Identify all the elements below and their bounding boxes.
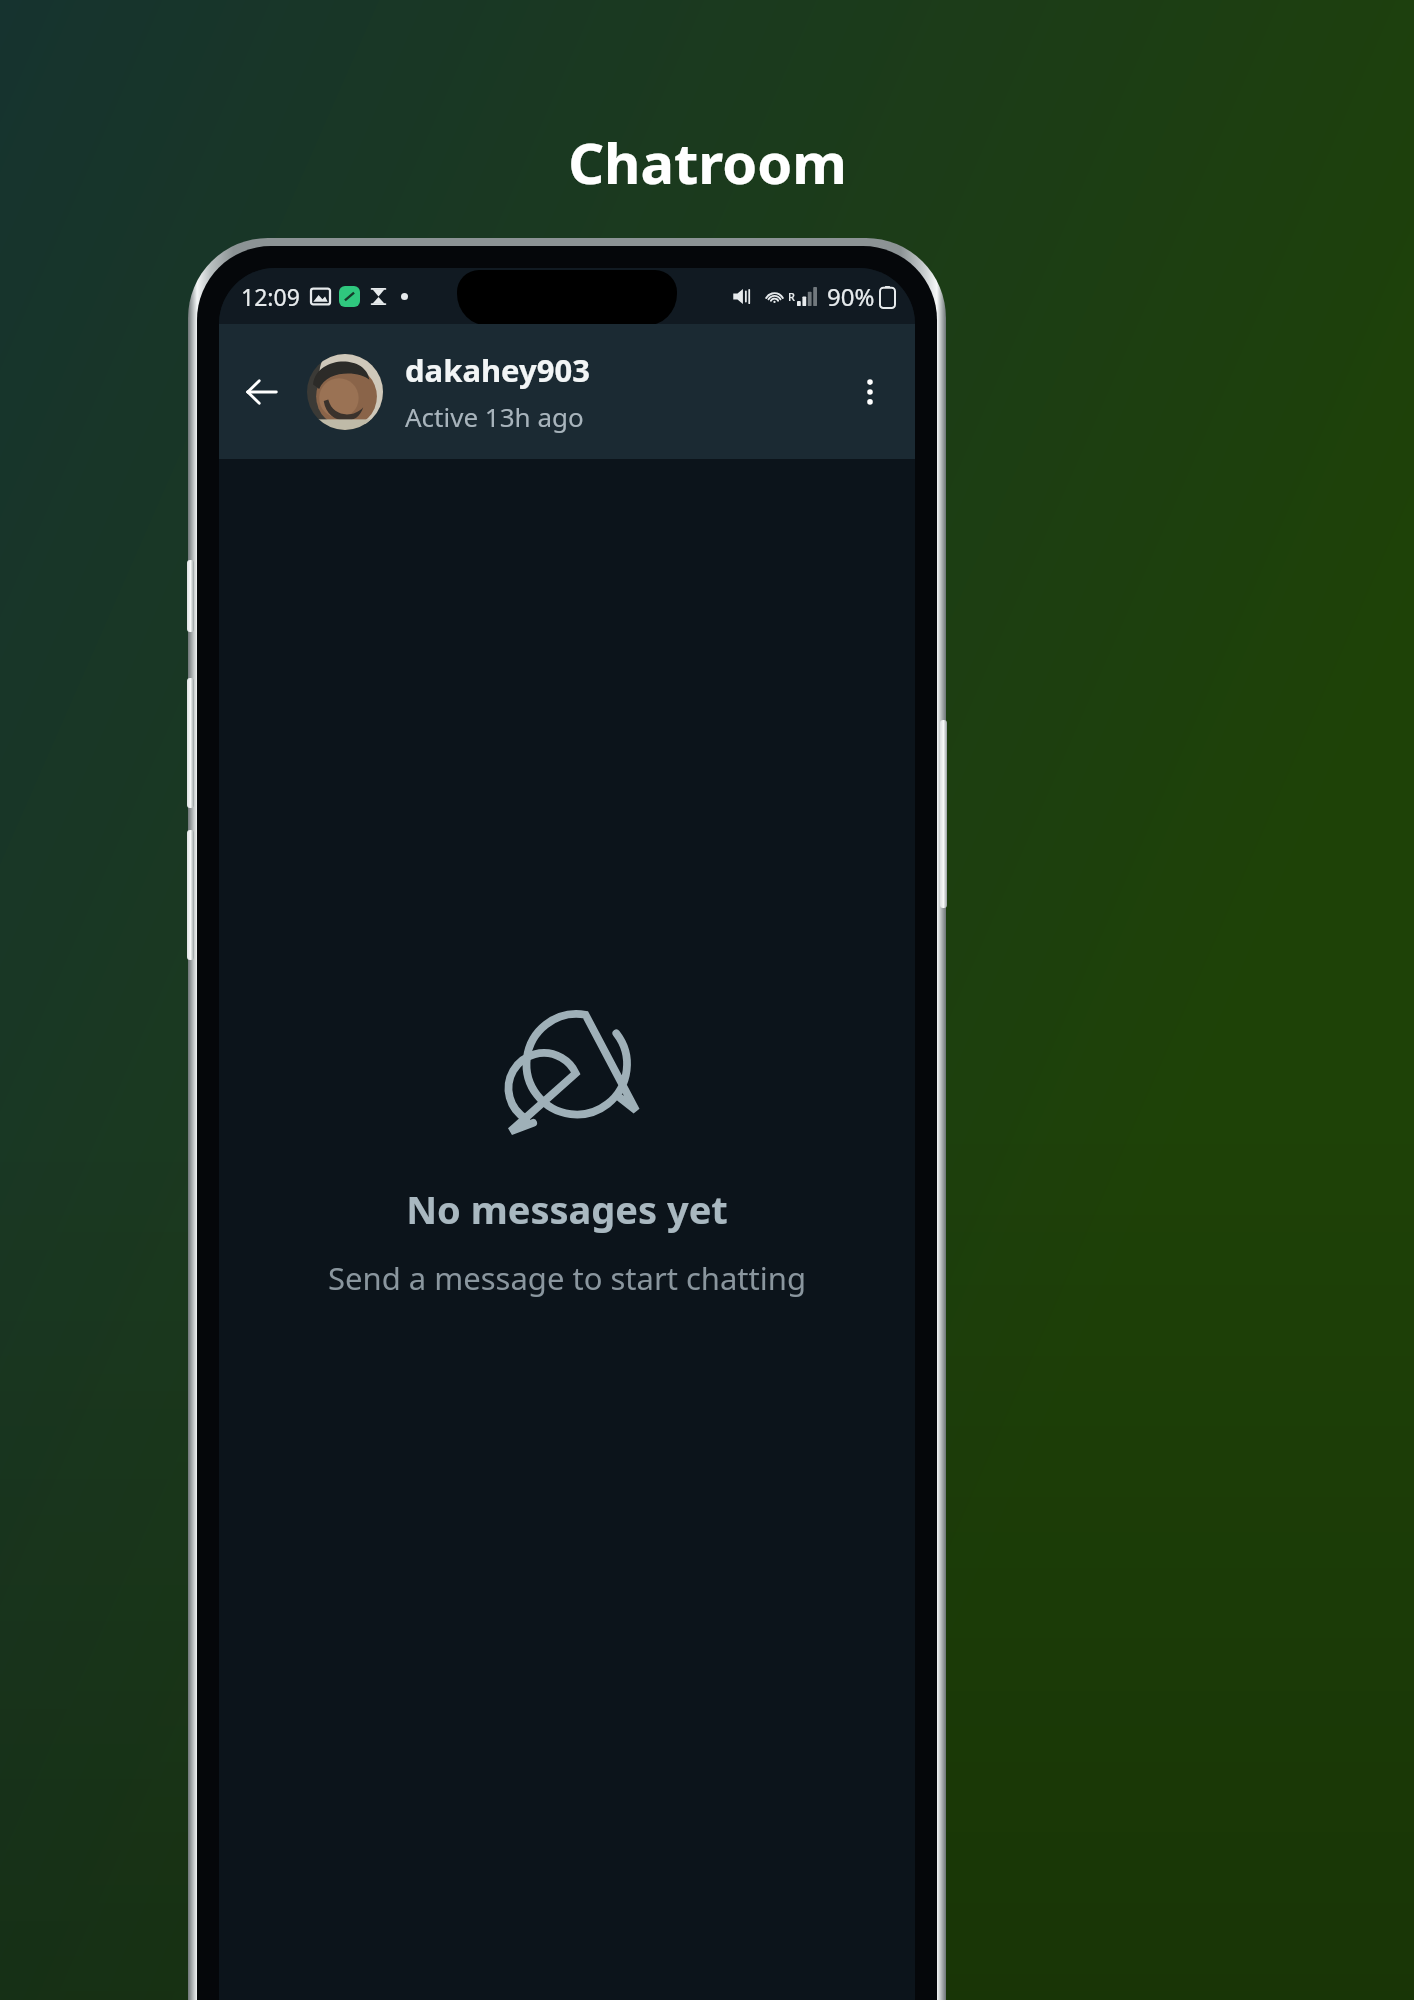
button[interactable]: Back [231, 361, 293, 423]
staticText: 12:09 [241, 281, 300, 312]
staticText: 90% [827, 280, 875, 313]
staticText: Active 13h ago [405, 399, 584, 434]
staticText: Chatroom [568, 124, 847, 200]
button[interactable]: Profile photo [307, 354, 383, 430]
button[interactable]: dakahey903 [405, 349, 839, 434]
staticText: dakahey903 [405, 349, 590, 391]
staticText: R [788, 289, 795, 304]
button[interactable]: More options [839, 361, 901, 423]
staticText: Send a message to start chatting [328, 1257, 806, 1299]
staticText: No messages yet [406, 1183, 728, 1235]
